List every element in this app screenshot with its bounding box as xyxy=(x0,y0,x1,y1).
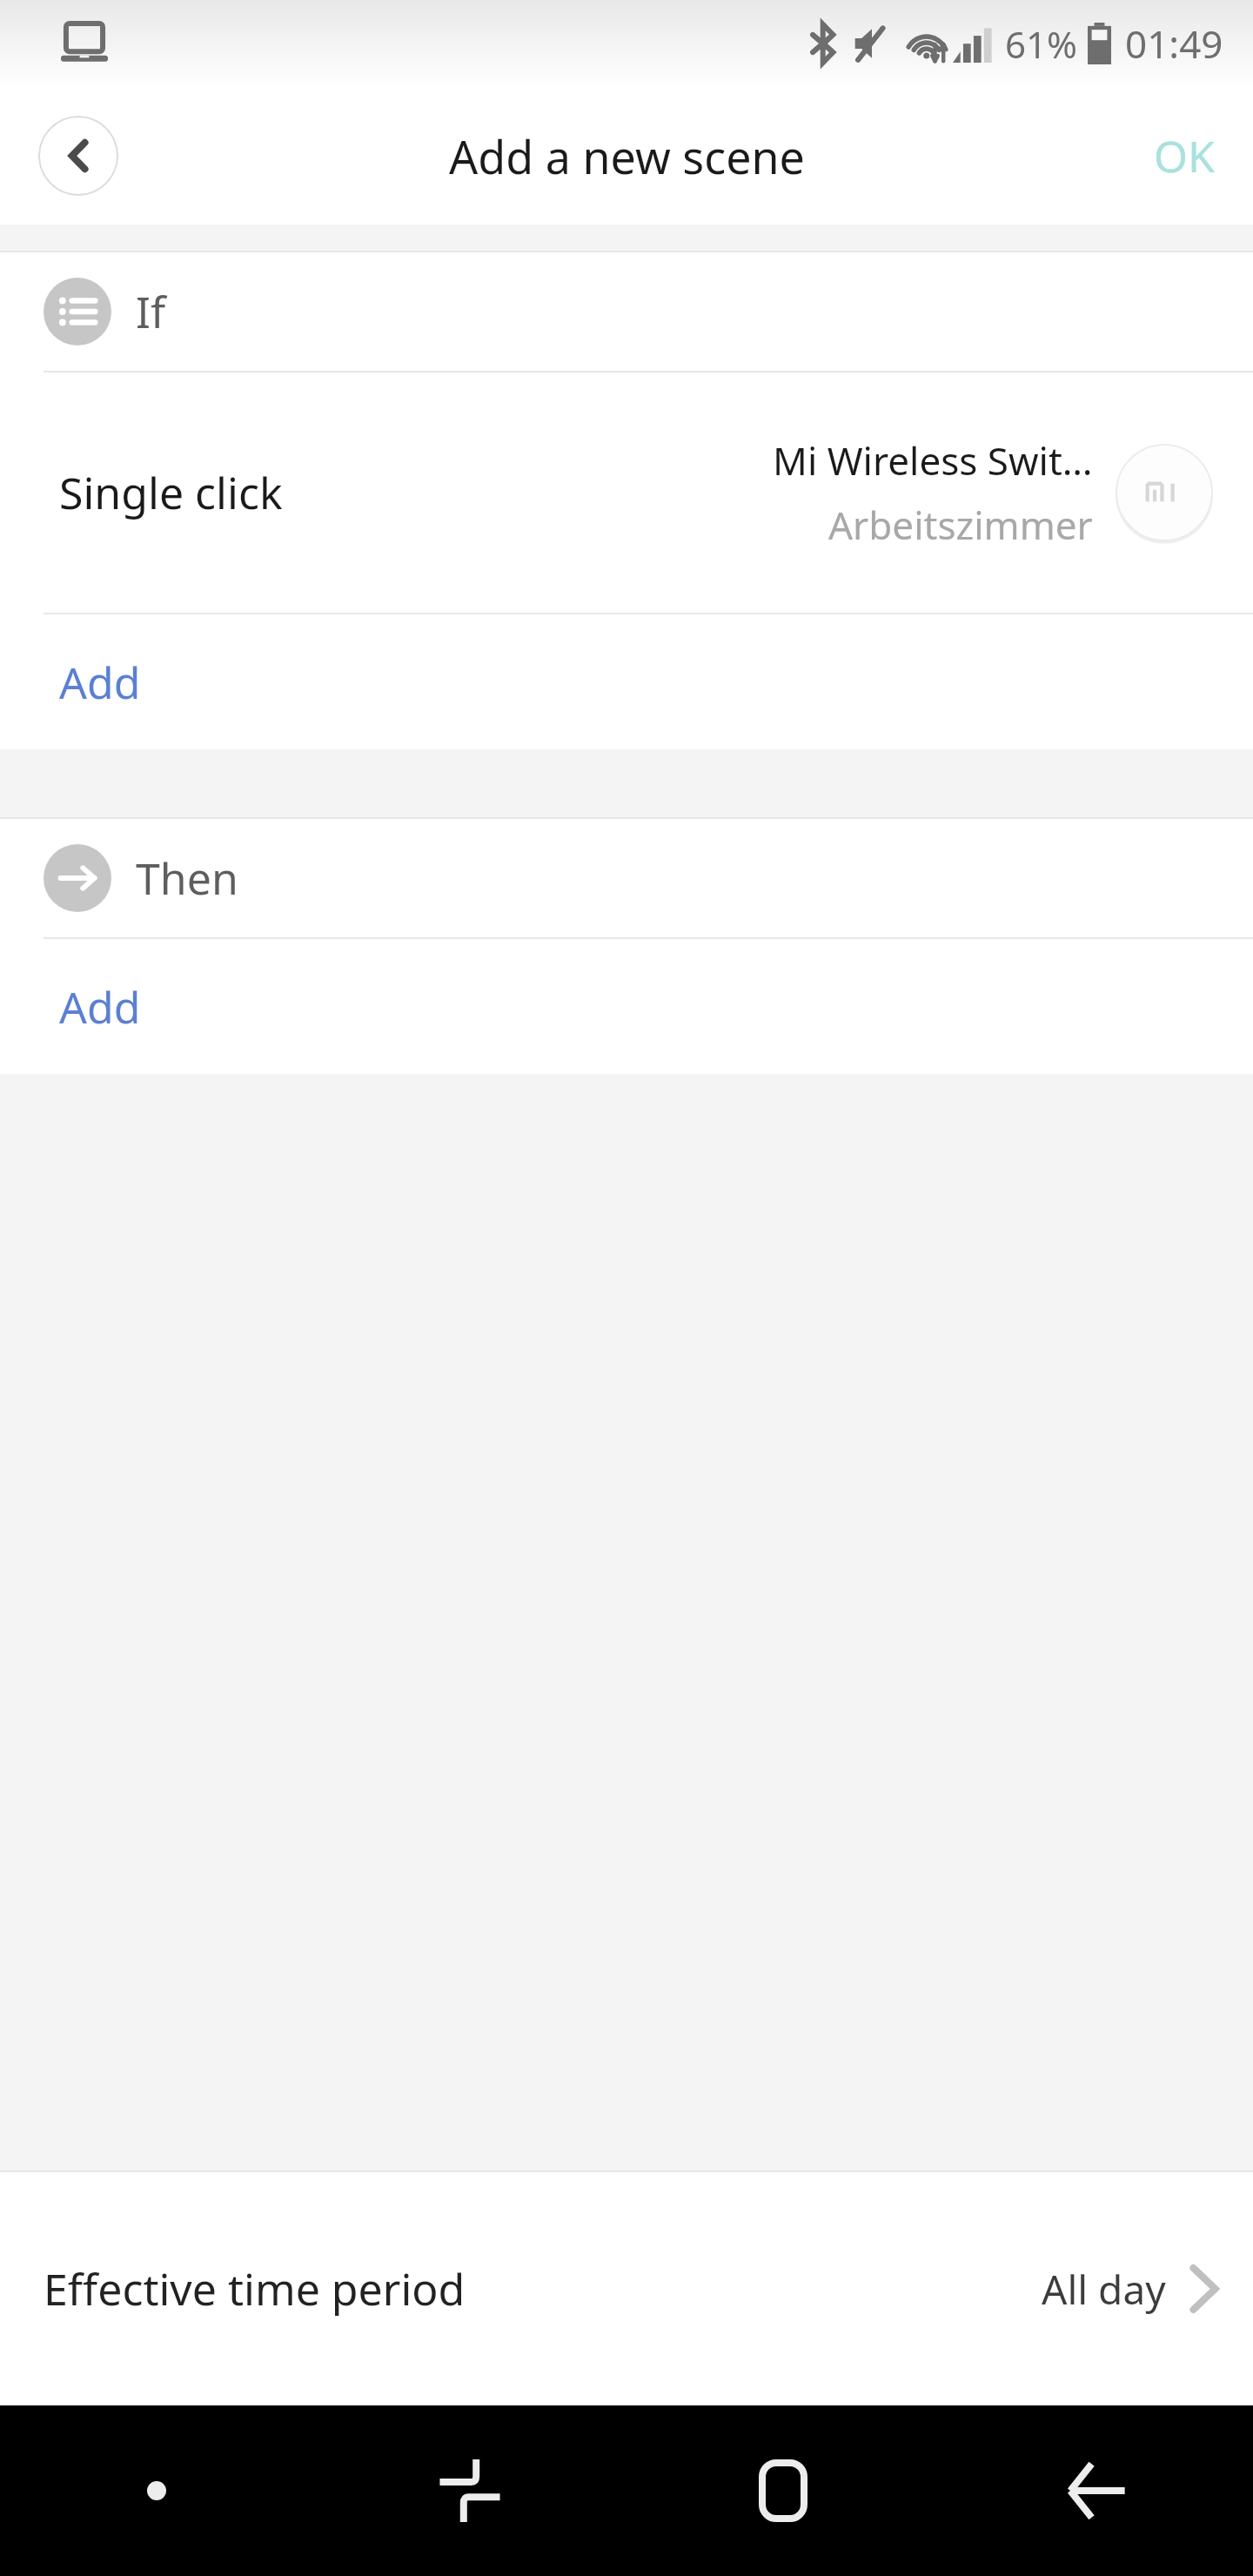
button[interactable]: Effective time period xyxy=(0,2172,1253,2405)
button[interactable]: Recents xyxy=(313,2405,626,2576)
button[interactable]: Add xyxy=(0,614,1253,749)
staticText: Single click xyxy=(59,463,283,522)
button[interactable]: Back xyxy=(940,2405,1253,2576)
button[interactable]: Home xyxy=(626,2405,940,2576)
button[interactable]: Add xyxy=(0,939,1253,1074)
button[interactable]: Back xyxy=(38,116,118,196)
staticText: 01:49 xyxy=(1125,17,1223,70)
button[interactable]: If xyxy=(0,252,1253,371)
staticText: 61% xyxy=(1005,19,1077,69)
staticText: Arbeitszimmer xyxy=(828,499,1093,551)
staticText: Mi Wireless Swit… xyxy=(773,434,1093,486)
staticText: All day xyxy=(1042,2262,1166,2317)
staticText: Add xyxy=(59,653,141,712)
button[interactable]: Then xyxy=(0,819,1253,937)
button[interactable]: Single click xyxy=(0,372,1253,613)
staticText: OK xyxy=(1154,126,1215,185)
button[interactable]: OK xyxy=(1116,100,1253,211)
staticText: Add xyxy=(59,977,141,1036)
button[interactable]: Assistant xyxy=(0,2405,313,2576)
staticText: If xyxy=(136,282,166,341)
staticText: Add a new scene xyxy=(449,125,805,187)
staticText: Effective time period xyxy=(44,2259,466,2318)
staticText: Then xyxy=(136,849,238,908)
